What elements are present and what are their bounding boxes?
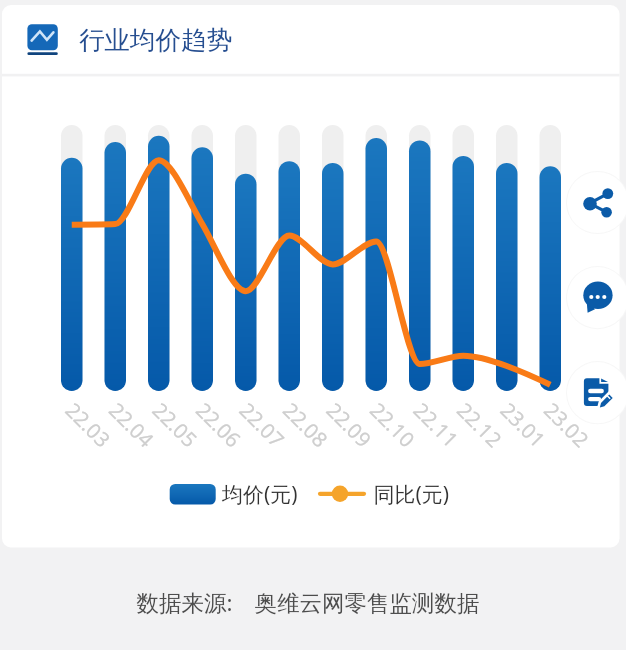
button[interactable]: Comment <box>566 266 626 329</box>
button[interactable]: Edit report <box>566 361 626 424</box>
button[interactable]: Share <box>566 171 626 234</box>
